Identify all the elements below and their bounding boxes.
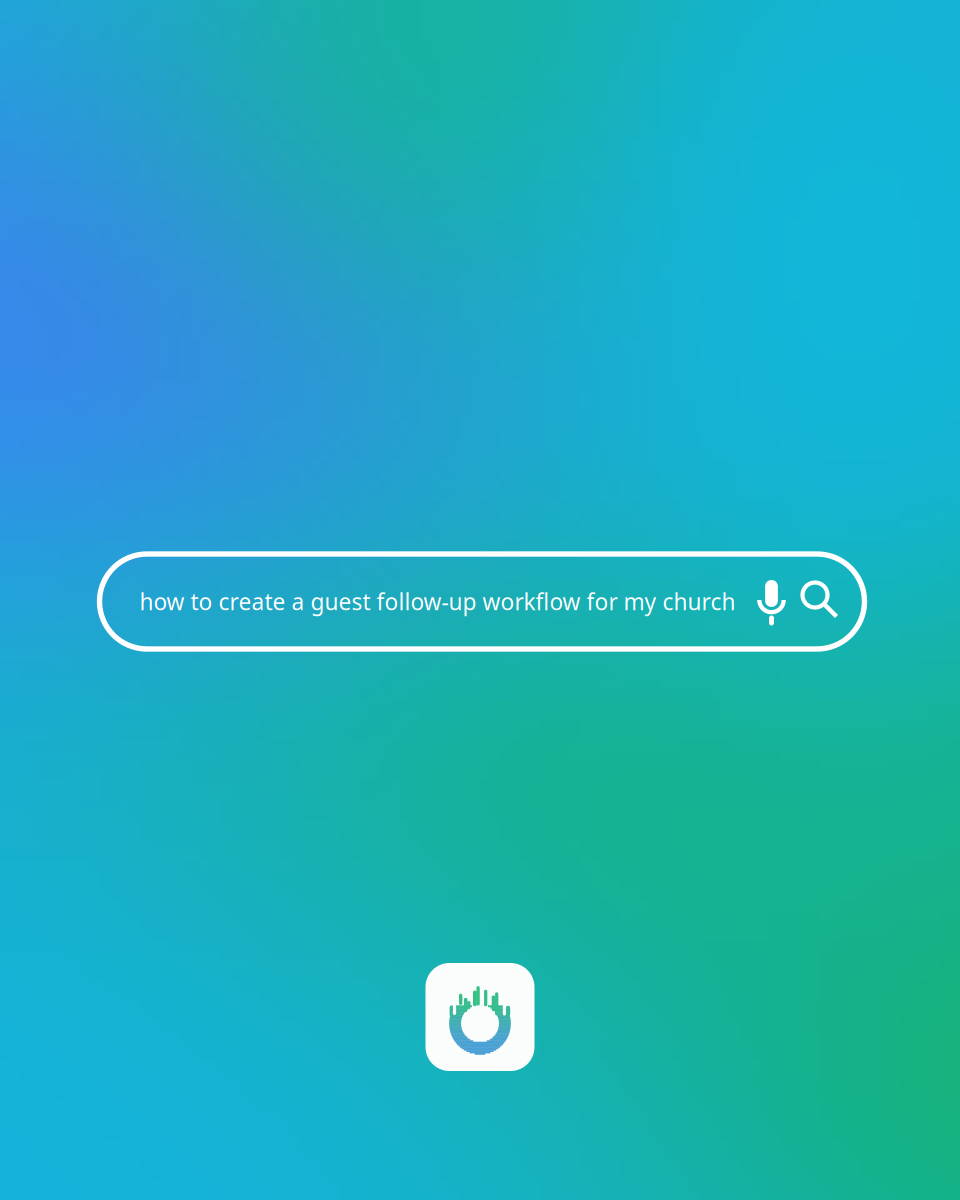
staticText: how to create a guest follow-up workflow…: [139, 586, 735, 616]
button[interactable]: Open app: [425, 963, 534, 1071]
button[interactable]: how to create a guest follow-up workflow…: [99, 554, 864, 649]
